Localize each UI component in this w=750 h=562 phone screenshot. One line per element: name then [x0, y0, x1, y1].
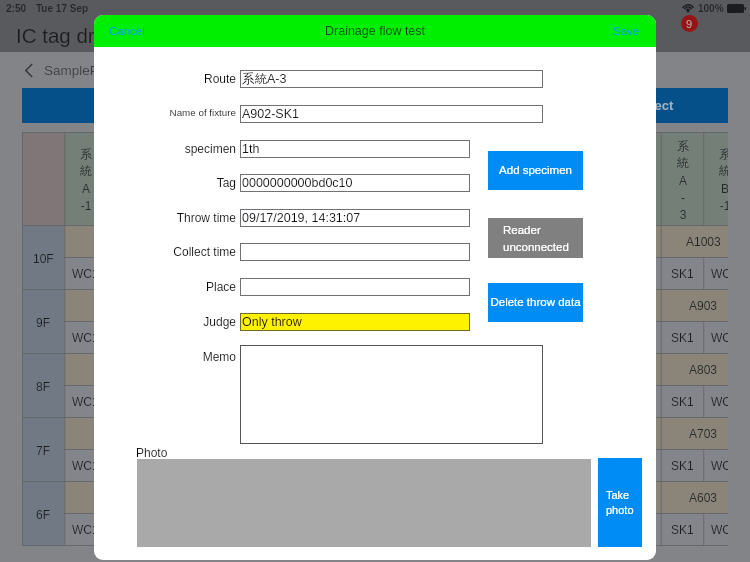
staticText: Delete throw data — [490, 296, 581, 309]
staticText: Add specimen — [499, 164, 572, 177]
button[interactable]: Only throw — [240, 313, 470, 331]
staticText: 系 統 A -1 — [80, 146, 92, 212]
staticText: 9 — [686, 18, 693, 30]
button[interactable]: Select — [22, 88, 728, 123]
staticText: SK1 — [117, 523, 140, 536]
staticText: specimen — [106, 142, 236, 155]
staticText: SK1 — [287, 267, 310, 280]
staticText: 100% — [698, 3, 724, 14]
staticText: SK1 — [671, 331, 694, 344]
staticText: A1003 — [515, 235, 550, 248]
staticText: 系 統 D -3 — [549, 146, 561, 212]
staticText: WC1 — [413, 267, 440, 280]
staticText: WC1 — [72, 459, 99, 472]
staticText: Select — [635, 98, 674, 113]
button[interactable]: Delete throw data — [488, 283, 583, 322]
button[interactable]: 1th — [240, 140, 470, 158]
button[interactable]: Unsent — [649, 19, 702, 45]
staticText: SK1 — [671, 459, 694, 472]
staticText: Route — [106, 72, 236, 85]
staticText: 系 統 A -3 — [421, 146, 433, 212]
staticText: WC1 — [711, 267, 728, 280]
staticText: A903 — [518, 299, 547, 312]
button[interactable] — [240, 243, 470, 261]
button[interactable]: 09/17/2019, 14:31:07 — [240, 209, 470, 227]
staticText: SK1 — [458, 267, 481, 280]
staticText: Save — [613, 25, 640, 38]
button[interactable]: Reader unconnected — [488, 218, 583, 258]
staticText: Judge — [106, 315, 236, 328]
button[interactable]: A902-SK1 — [240, 105, 543, 123]
staticText: SamplePJ — [44, 63, 106, 78]
staticText: A903 — [689, 299, 718, 312]
staticText: Tue 17 Sep — [36, 3, 89, 14]
button[interactable]: 系統A-3 — [240, 70, 543, 88]
staticText: WC1 — [584, 523, 611, 536]
staticText: Cancel — [109, 25, 145, 38]
staticText: Place — [106, 280, 236, 293]
button[interactable]: Cancel — [94, 19, 157, 44]
staticText: SK1 — [671, 395, 694, 408]
button[interactable]: 0000000000bd0c10 — [240, 174, 470, 192]
staticText: 10F — [33, 252, 54, 265]
staticText: SK1 — [671, 523, 694, 536]
staticText: 7F — [36, 444, 51, 457]
staticText: 2:50 — [6, 3, 27, 14]
button[interactable] — [240, 345, 543, 444]
button[interactable]: Back to SamplePJ — [23, 61, 108, 80]
staticText: Take photo — [606, 489, 634, 516]
staticText: SK1 — [372, 267, 395, 280]
button[interactable]: Take photo — [598, 458, 642, 547]
staticText: 0000000000bd0c10 — [242, 176, 353, 190]
staticText: WC1 — [243, 267, 270, 280]
staticText: 9F — [36, 316, 51, 329]
staticText: 6F — [36, 508, 51, 521]
staticText: 系 統 B -3 — [464, 146, 476, 212]
button[interactable] — [240, 278, 470, 296]
staticText: 系 統 A -2 — [251, 146, 263, 212]
staticText: 系 統 C -2 — [336, 146, 348, 212]
button[interactable]: Save — [601, 19, 656, 44]
staticText: A703 — [518, 427, 547, 440]
button[interactable]: Add specimen — [488, 151, 583, 190]
